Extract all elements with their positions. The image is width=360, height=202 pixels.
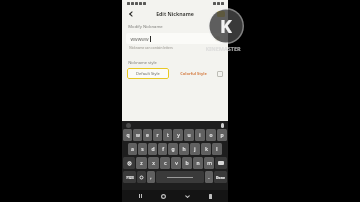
button[interactable]: e	[143, 129, 152, 141]
button[interactable]: Numbers	[123, 171, 136, 183]
staticText: a	[131, 146, 134, 153]
button[interactable]: Help	[217, 11, 225, 17]
staticText: d	[151, 146, 155, 153]
button[interactable]: h	[179, 143, 189, 155]
staticText: q	[126, 132, 130, 139]
staticText: b	[185, 160, 189, 167]
button[interactable]: Done	[214, 171, 227, 183]
staticText: Edit Nickname	[156, 10, 194, 17]
button[interactable]: Shift	[123, 157, 135, 169]
staticText: j	[194, 146, 196, 153]
button[interactable]: m	[204, 157, 214, 169]
button[interactable]: Emoji	[126, 123, 131, 128]
staticText: p	[220, 132, 224, 139]
button[interactable]: n	[193, 157, 203, 169]
button[interactable]: y	[173, 129, 183, 141]
button[interactable]: x	[148, 157, 159, 169]
button[interactable]: k	[201, 143, 211, 155]
button[interactable]: v	[171, 157, 181, 169]
button[interactable]: c	[160, 157, 170, 169]
button[interactable]: u	[184, 129, 194, 141]
button[interactable]: Recents	[135, 191, 145, 201]
staticText: y	[177, 132, 180, 139]
button[interactable]: i	[195, 129, 205, 141]
button[interactable]: p	[217, 129, 227, 141]
staticText: c	[164, 160, 167, 167]
staticText: g	[171, 146, 175, 153]
button[interactable]: j	[190, 143, 200, 155]
button[interactable]: Back	[125, 8, 136, 19]
staticText: f	[162, 146, 164, 153]
button[interactable]: g	[168, 143, 178, 155]
staticText: m	[207, 160, 212, 167]
staticText: K	[220, 14, 232, 39]
staticText: t	[167, 132, 169, 139]
staticText: e	[146, 132, 149, 139]
button[interactable]: t	[163, 129, 172, 141]
button[interactable]: Backspace	[215, 157, 227, 169]
button[interactable]: d	[148, 143, 157, 155]
staticText: s	[141, 146, 144, 153]
staticText: u	[187, 132, 191, 139]
button[interactable]: Clear text	[215, 36, 220, 41]
button[interactable]: Clipboard	[205, 191, 215, 201]
staticText: i	[199, 132, 201, 139]
button[interactable]: Voice input	[221, 123, 224, 128]
staticText: o	[209, 132, 213, 139]
staticText: r	[156, 132, 159, 139]
button[interactable]: q	[123, 129, 132, 141]
button[interactable]: Home	[158, 191, 168, 201]
staticText: .	[208, 174, 210, 181]
button[interactable]: Hide keyboard	[182, 191, 192, 201]
button[interactable]: f	[158, 143, 167, 155]
staticText: z	[140, 160, 143, 167]
button[interactable]: wwwww	[126, 33, 224, 44]
staticText: x	[152, 160, 155, 167]
staticText: l	[216, 146, 218, 153]
button[interactable]: z	[136, 157, 147, 169]
staticText: w	[136, 132, 140, 139]
button[interactable]: Preview	[217, 71, 223, 77]
button[interactable]: ,	[147, 171, 155, 183]
staticText: ,	[150, 174, 152, 181]
button[interactable]: s	[138, 143, 147, 155]
button[interactable]: a	[128, 143, 137, 155]
staticText: ?123	[126, 175, 134, 180]
staticText: Nickname style	[128, 60, 157, 65]
staticText: Default Style	[136, 71, 160, 76]
staticText: h	[182, 146, 186, 153]
button[interactable]: Colorful Style	[177, 68, 209, 79]
staticText: KINEMASTER	[205, 45, 241, 52]
button[interactable]: l	[212, 143, 222, 155]
staticText: Nickname can contain letters	[129, 46, 173, 50]
staticText: Done	[216, 175, 225, 180]
button[interactable]: b	[182, 157, 192, 169]
button[interactable]: o	[206, 129, 216, 141]
staticText: wwwww	[130, 36, 149, 42]
button[interactable]: r	[153, 129, 162, 141]
button[interactable]: Settings	[137, 171, 146, 183]
button[interactable]: .	[205, 171, 213, 183]
button[interactable]: Default Style	[127, 68, 169, 79]
staticText: v	[175, 160, 178, 167]
staticText: n	[196, 160, 200, 167]
button[interactable]: w	[133, 129, 142, 141]
staticText: Colorful Style	[180, 71, 207, 76]
staticText: k	[205, 146, 208, 153]
staticText: Modify Nickname	[128, 24, 163, 30]
button[interactable]: Space	[156, 171, 204, 183]
